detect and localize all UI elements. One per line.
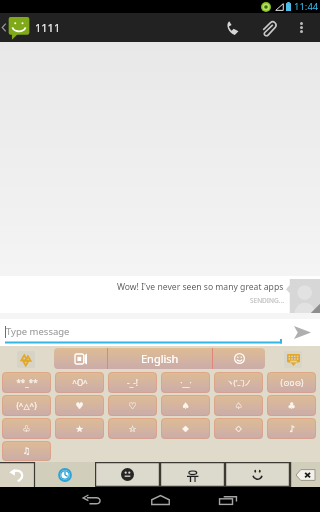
staticText: ☆ <box>128 424 137 434</box>
staticText: SENDING... <box>250 296 284 305</box>
button[interactable]: Text emoticons <box>160 462 225 487</box>
staticText: ^O^ <box>72 377 88 388</box>
staticText: ♪ <box>289 424 295 434</box>
button[interactable]: (^△^) <box>2 395 51 416</box>
staticText: **_** <box>16 377 38 388</box>
button[interactable]: ·__· <box>161 372 210 393</box>
staticText: ♡ <box>128 401 137 411</box>
button[interactable]: Emoticons <box>213 348 265 369</box>
button[interactable]: ♫ <box>2 441 51 461</box>
staticText: ♫ <box>22 446 31 456</box>
staticText: ★ <box>75 424 84 434</box>
button[interactable]: ☆ <box>108 418 157 439</box>
button[interactable]: -_-! <box>108 372 157 393</box>
staticText: Wow! I've never seen so many great apps <box>117 281 284 293</box>
button[interactable]: Input method <box>54 348 107 369</box>
staticText: ·__· <box>180 377 192 388</box>
button[interactable]: Hide keyboard <box>284 351 302 368</box>
button[interactable]: ♤ <box>214 395 263 416</box>
button[interactable]: Undo <box>0 462 35 487</box>
staticText: 1111 <box>35 20 61 35</box>
button[interactable]: ♪ <box>267 418 316 439</box>
button[interactable]: Recent <box>35 462 95 487</box>
button[interactable]: (⊙o⊙) <box>267 372 316 393</box>
button[interactable]: Keyboard settings <box>17 351 35 368</box>
staticText: ♣ <box>287 401 296 411</box>
button[interactable]: English <box>108 348 212 369</box>
staticText: (^△^) <box>16 400 37 411</box>
staticText: ♥ <box>75 401 84 411</box>
staticText: -_-! <box>127 377 138 388</box>
button[interactable]: ♡ <box>108 395 157 416</box>
button[interactable]: Navigate up <box>0 13 30 42</box>
button[interactable]: ★ <box>55 418 104 439</box>
staticText: ◇ <box>235 424 242 433</box>
button[interactable]: ◆ <box>161 418 210 439</box>
button[interactable]: Emoji faces <box>95 462 160 487</box>
staticText: 11:44 <box>294 0 319 13</box>
button[interactable]: **_** <box>2 372 51 393</box>
button[interactable]: ♧ <box>2 418 51 439</box>
staticText: 유 <box>186 467 199 483</box>
button[interactable]: ♣ <box>267 395 316 416</box>
staticText: (⊙o⊙) <box>280 377 304 388</box>
button[interactable]: ^O^ <box>55 372 104 393</box>
button[interactable]: ヽ(′_`)ノ <box>214 372 263 393</box>
staticText: ♠ <box>181 401 190 411</box>
staticText: Type message <box>6 325 70 338</box>
staticText: ヽ(′_`)ノ <box>226 378 252 388</box>
button[interactable]: Home <box>136 487 184 512</box>
button[interactable]: Send <box>284 319 320 346</box>
button[interactable]: Delete <box>290 462 320 487</box>
button[interactable]: Smileys <box>225 462 290 487</box>
button[interactable]: ♥ <box>55 395 104 416</box>
staticText: ♤ <box>234 401 243 411</box>
button[interactable]: More options <box>286 13 316 42</box>
button[interactable]: Call <box>214 13 250 42</box>
button[interactable]: ♠ <box>161 395 210 416</box>
button[interactable]: Recents <box>204 487 252 512</box>
staticText: English <box>141 351 179 366</box>
button[interactable]: Back <box>68 487 116 512</box>
button[interactable]: ◇ <box>214 418 263 439</box>
staticText: ◆ <box>182 424 189 433</box>
staticText: ♧ <box>22 424 31 434</box>
button[interactable]: Attach <box>250 13 286 42</box>
